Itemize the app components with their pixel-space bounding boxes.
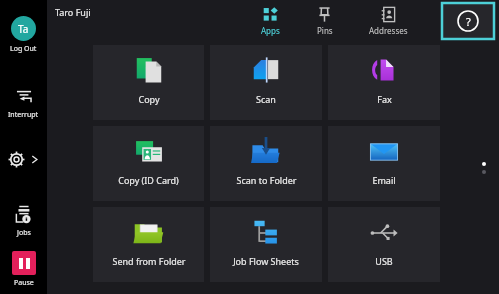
button[interactable]: Job Flow Sheets xyxy=(210,207,322,282)
staticText: Pause xyxy=(14,278,34,288)
button[interactable]: Copy xyxy=(93,45,204,120)
button[interactable]: Send from Folder xyxy=(93,207,204,282)
staticText: Apps xyxy=(261,25,280,36)
staticText: Copy (ID Card) xyxy=(118,174,179,186)
button[interactable]: Copy (ID Card) xyxy=(93,126,204,201)
button[interactable]: Jobs xyxy=(0,202,47,240)
button[interactable]: Addresses xyxy=(365,4,412,38)
staticText: Scan to Folder xyxy=(236,174,297,186)
button[interactable]: Pause xyxy=(0,251,47,294)
staticText: Taro Fuji xyxy=(55,6,91,18)
staticText: Fax xyxy=(377,93,392,105)
staticText: USB xyxy=(375,255,393,267)
button[interactable]: Scan to Folder xyxy=(210,126,322,201)
button[interactable]: USB xyxy=(328,207,440,282)
button[interactable]: Settings xyxy=(0,147,47,172)
staticText: Addresses xyxy=(369,25,408,36)
button[interactable]: Apps xyxy=(257,4,284,38)
staticText: Jobs xyxy=(17,228,31,238)
button[interactable]: Fax xyxy=(328,45,440,120)
staticText: Scan xyxy=(256,93,276,105)
staticText: Email xyxy=(372,174,396,186)
staticText: Ta xyxy=(18,22,29,36)
staticText: Copy xyxy=(138,93,160,105)
button[interactable]: Interrupt xyxy=(0,83,47,122)
button[interactable]: Ta xyxy=(0,14,47,56)
staticText: Send from Folder xyxy=(112,255,186,267)
staticText: Log Out xyxy=(10,44,37,54)
staticText: Job Flow Sheets xyxy=(233,255,299,267)
staticText: ? xyxy=(466,14,471,29)
button[interactable]: Help xyxy=(442,3,494,39)
button[interactable]: Pins xyxy=(312,4,337,38)
button[interactable]: Scan xyxy=(210,45,322,120)
staticText: Pins xyxy=(317,25,333,36)
button[interactable]: Email xyxy=(328,126,440,201)
staticText: Interrupt xyxy=(8,110,39,120)
